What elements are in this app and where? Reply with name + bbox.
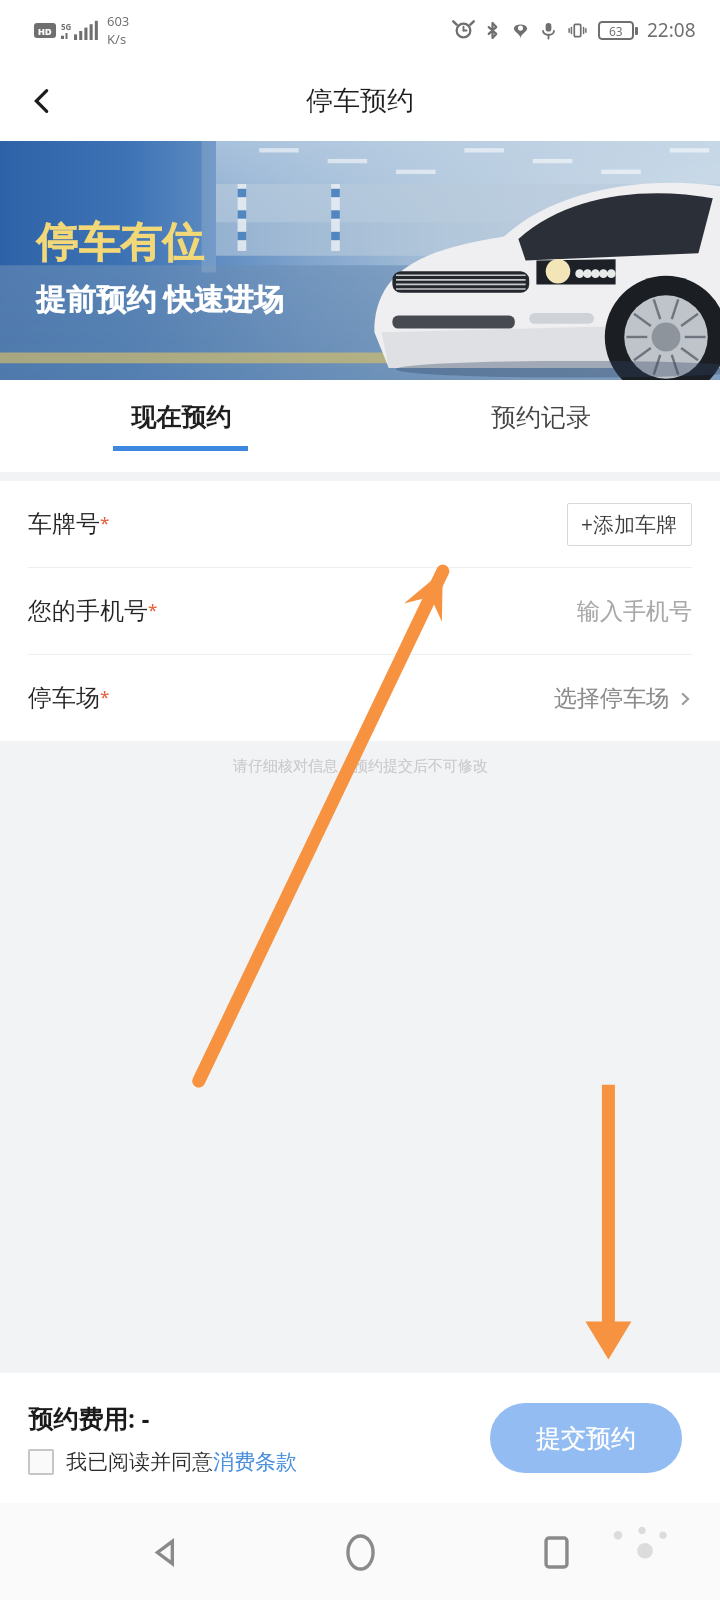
button[interactable]: 提交预约 — [490, 1403, 682, 1473]
staticText: 提交预约 — [536, 1423, 636, 1454]
staticText: 消费条款 — [213, 1449, 297, 1475]
button[interactable]: Home — [329, 1521, 391, 1583]
staticText: 预约记录 — [491, 402, 591, 433]
staticText: 现在预约 — [131, 402, 231, 433]
staticText: 停车有位 — [36, 217, 204, 270]
staticText: 63 — [609, 23, 623, 39]
button[interactable]: Back — [134, 1521, 196, 1583]
button[interactable]: 我已阅读并同意 — [28, 1449, 297, 1475]
staticText: * — [148, 598, 158, 621]
staticText: 提前预约 快速进场 — [36, 278, 284, 319]
button[interactable]: Recents — [525, 1521, 587, 1583]
button[interactable]: Back — [14, 73, 70, 129]
button[interactable]: 现在预约 — [0, 380, 360, 472]
staticText: * — [100, 511, 110, 534]
button[interactable]: 您的手机号 — [0, 568, 720, 654]
staticText: 请仔细核对信息，预约提交后不可修改 — [233, 757, 488, 776]
staticText: 选择停车场 — [554, 684, 669, 713]
staticText: 停车场 — [28, 683, 100, 713]
staticText: 603 — [107, 12, 130, 30]
button[interactable]: 车牌号 — [0, 481, 720, 567]
staticText: 5G — [61, 21, 72, 32]
staticText: 我已阅读并同意 — [66, 1449, 213, 1475]
staticText: HD — [38, 25, 52, 37]
staticText: 输入手机号 — [577, 597, 692, 626]
button[interactable]: 预约记录 — [360, 380, 720, 472]
staticText: 车牌号 — [28, 509, 100, 539]
staticText: 您的手机号 — [28, 596, 148, 626]
staticText: 22:08 — [647, 17, 696, 43]
button[interactable]: 停车场 — [0, 655, 720, 741]
staticText: K/s — [107, 30, 127, 48]
staticText: +添加车牌 — [581, 510, 678, 539]
staticText: * — [100, 685, 110, 708]
staticText: 停车预约 — [306, 84, 414, 118]
staticText: 预约费用: - — [28, 1401, 150, 1435]
